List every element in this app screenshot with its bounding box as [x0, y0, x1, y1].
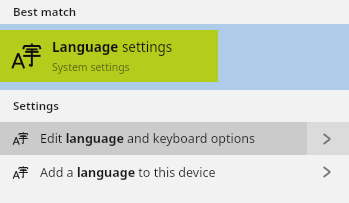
- staticText: Add a language to this device: [40, 164, 216, 181]
- staticText: Edit language and keyboard options: [40, 130, 255, 147]
- button[interactable]: Language settings: [0, 30, 218, 82]
- staticText: System settings: [52, 60, 130, 74]
- button[interactable]: Open Add a language to this device: [307, 155, 349, 189]
- button[interactable]: Edit language and keyboard options: [0, 122, 349, 155]
- button[interactable]: Open Edit language and keyboard options: [307, 122, 349, 155]
- staticText: Language settings: [52, 38, 173, 56]
- button[interactable]: Add a language to this device: [0, 155, 349, 189]
- staticText: Settings: [13, 98, 59, 114]
- staticText: Best match: [13, 4, 77, 20]
